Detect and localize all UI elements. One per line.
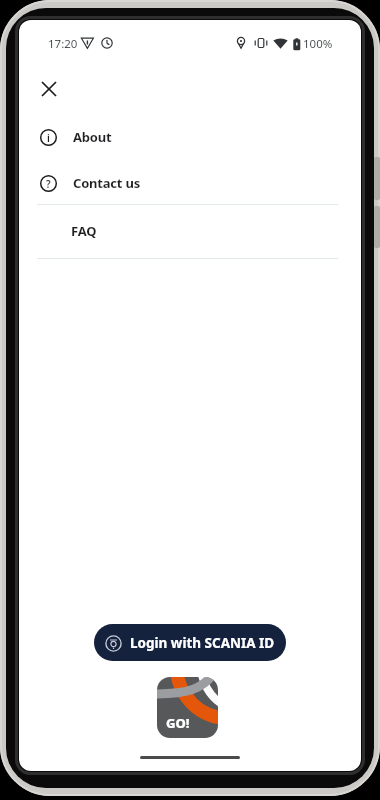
- staticText: 100%: [303, 36, 333, 52]
- button[interactable]: ?: [19, 160, 361, 206]
- button[interactable]: FAQ: [19, 208, 361, 254]
- button[interactable]: [26, 66, 72, 112]
- staticText: FAQ: [71, 222, 97, 240]
- staticText: GO!: [166, 714, 190, 732]
- staticText: i: [47, 131, 50, 145]
- staticText: About: [73, 128, 112, 146]
- staticText: Login with SCANIA ID: [130, 634, 275, 652]
- staticText: ?: [46, 177, 51, 191]
- staticText: Contact us: [73, 174, 141, 192]
- staticText: 17:20: [48, 36, 78, 52]
- button[interactable]: Login with SCANIA ID: [94, 624, 286, 661]
- button[interactable]: i: [19, 114, 361, 160]
